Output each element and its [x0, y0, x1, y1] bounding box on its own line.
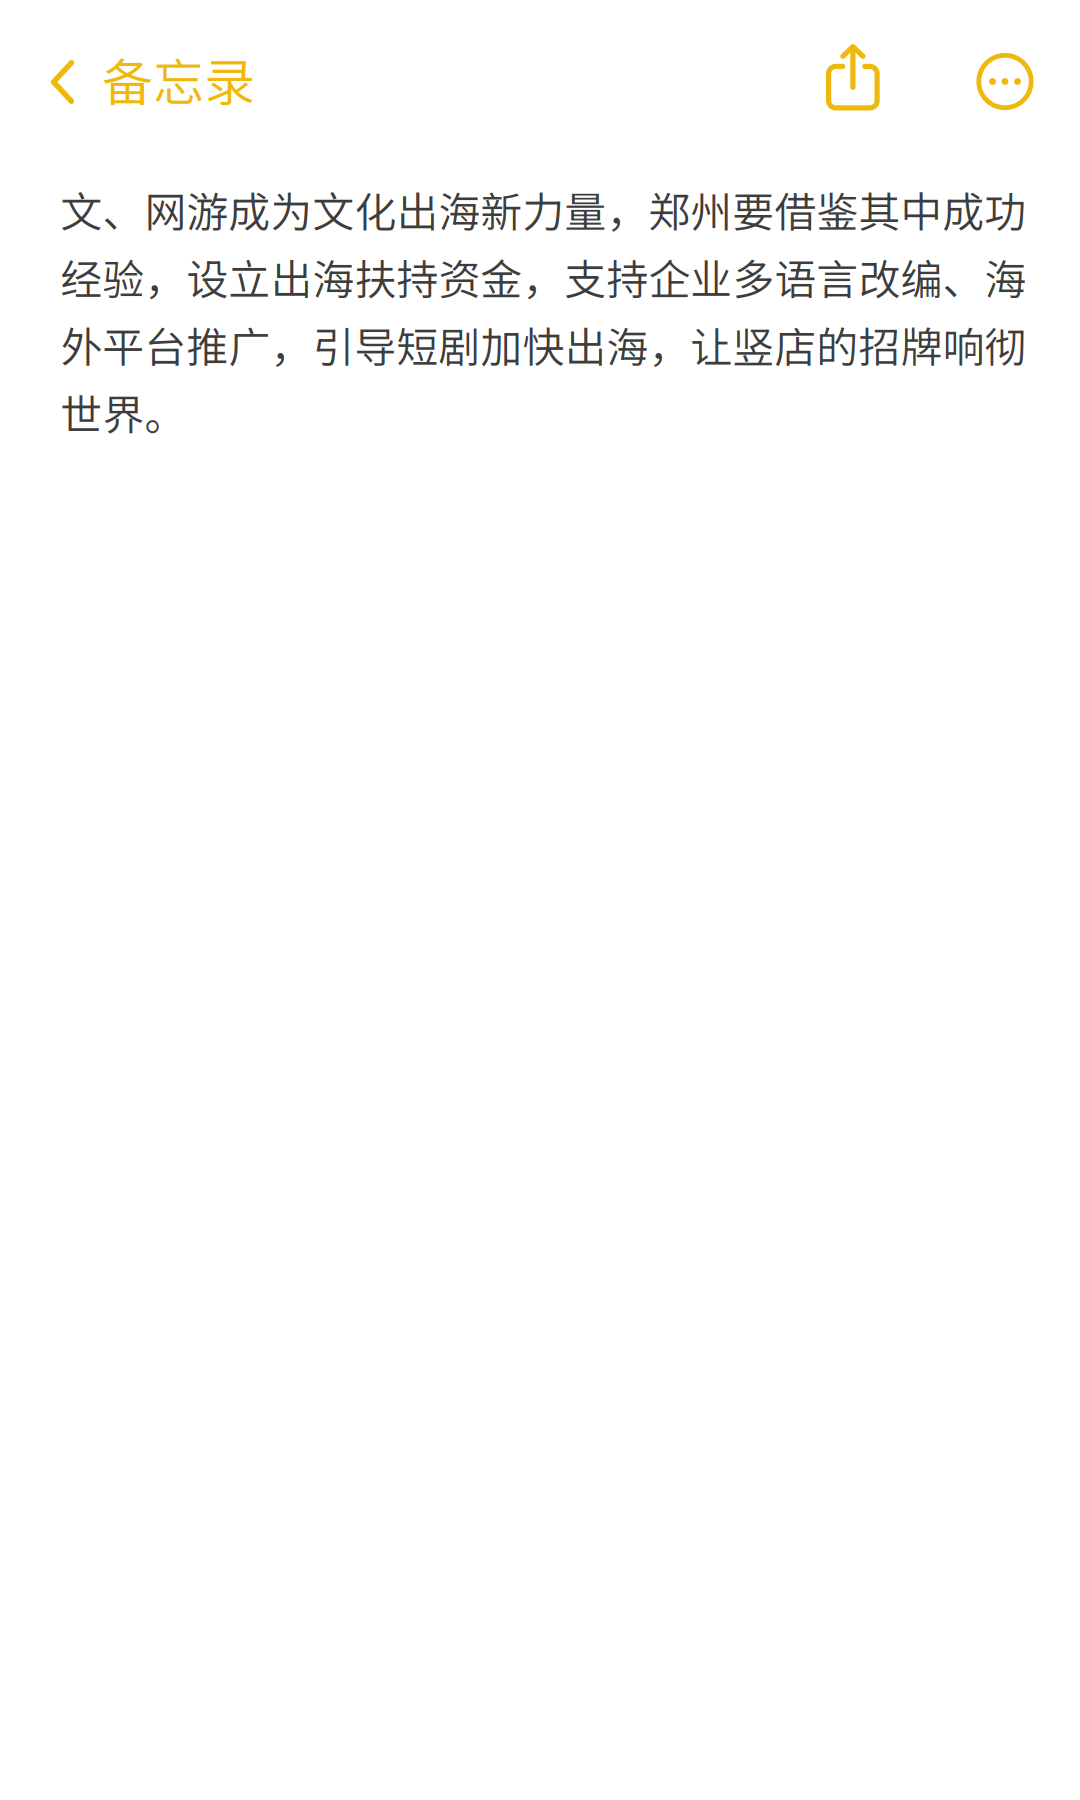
button[interactable]: Share [787, 11, 919, 143]
staticText: 文、网游成为文化出海新力量，郑州要借鉴其中成功经验，设立出海扶持资金，支持企业多… [60, 179, 1026, 442]
button[interactable]: 备忘录 [3, 16, 279, 148]
staticText: 备忘录 [102, 42, 255, 116]
button[interactable]: More options [939, 15, 1071, 147]
